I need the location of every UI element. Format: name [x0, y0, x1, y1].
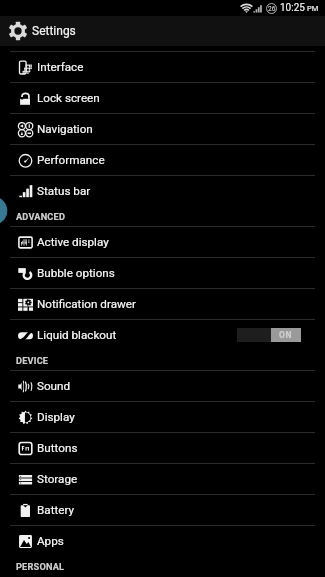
staticText: Liquid blackout	[37, 328, 117, 342]
staticText: Notification drawer	[37, 297, 136, 311]
staticText: Interface	[37, 60, 84, 74]
staticText: PM	[307, 4, 319, 13]
button[interactable]: Sound	[0, 370, 325, 401]
staticText: Active display	[37, 235, 109, 249]
staticText: Buttons	[37, 441, 78, 455]
staticText: PERSONAL	[16, 561, 65, 572]
staticText: 10:25	[280, 2, 305, 14]
staticText: ON	[279, 330, 293, 340]
button[interactable]: Settings	[0, 16, 325, 46]
button[interactable]: Buttons	[0, 432, 325, 463]
staticText: 26	[268, 5, 276, 13]
button[interactable]: Display	[0, 401, 325, 432]
button[interactable]: Active display	[0, 226, 325, 257]
staticText: DEVICE	[16, 355, 49, 366]
button[interactable]: Apps	[0, 525, 325, 556]
button[interactable]: Battery	[0, 494, 325, 525]
button[interactable]: Notification drawer	[0, 288, 325, 319]
staticText: Performance	[37, 153, 105, 167]
button[interactable]: Navigation	[0, 113, 325, 144]
button[interactable]: Performance	[0, 144, 325, 175]
button[interactable]: Liquid blackout	[0, 319, 325, 350]
staticText: Lock screen	[37, 91, 100, 105]
button[interactable]: Lock screen	[0, 82, 325, 113]
button[interactable]: Interface	[0, 51, 325, 82]
staticText: ADVANCED	[16, 211, 66, 222]
staticText: Display	[37, 410, 75, 424]
button[interactable]: Liquid blackout toggle, on	[237, 328, 301, 342]
button[interactable]: Bubble options	[0, 257, 325, 288]
staticText: Battery	[37, 503, 75, 517]
button[interactable]: Status bar	[0, 175, 325, 206]
staticText: Bubble options	[37, 266, 115, 280]
staticText: Settings	[32, 24, 76, 38]
staticText: Status bar	[37, 184, 91, 198]
staticText: Apps	[37, 534, 64, 548]
staticText: Sound	[37, 379, 71, 393]
button[interactable]: Storage	[0, 463, 325, 494]
staticText: Navigation	[37, 122, 93, 136]
staticText: Storage	[37, 472, 78, 486]
